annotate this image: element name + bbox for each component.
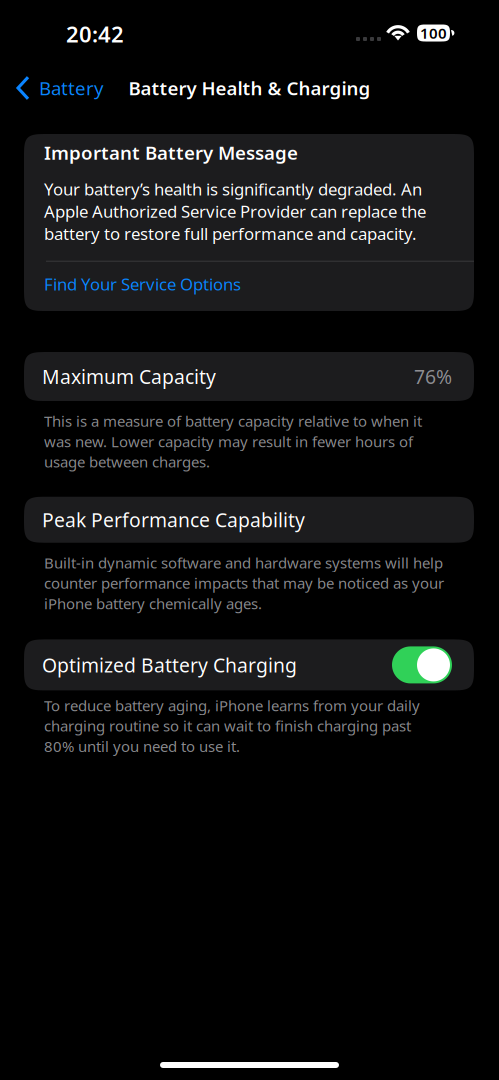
button[interactable]: Find Your Service Options xyxy=(24,262,474,295)
staticText: 20:42 xyxy=(66,19,124,49)
staticText: Peak Performance Capability xyxy=(42,507,305,533)
staticText: To reduce battery aging, iPhone learns f… xyxy=(44,695,420,756)
staticText: 100 xyxy=(420,23,447,43)
staticText: Important Battery Message xyxy=(44,140,298,165)
button[interactable]: Battery xyxy=(0,66,114,110)
staticText: This is a measure of battery capacity re… xyxy=(44,411,422,472)
staticText: 76% xyxy=(414,364,452,389)
staticText: Built-in dynamic software and hardware s… xyxy=(44,553,444,613)
button[interactable]: Optimized Battery Charging xyxy=(392,646,452,683)
staticText: Battery xyxy=(39,76,104,100)
staticText: Your battery’s health is significantly d… xyxy=(44,178,426,245)
staticText: Battery Health & Charging xyxy=(128,76,370,100)
button[interactable]: Peak Performance Capability xyxy=(0,497,499,543)
staticText: Find Your Service Options xyxy=(44,273,241,295)
staticText: Optimized Battery Charging xyxy=(42,652,297,678)
staticText: Maximum Capacity xyxy=(42,364,216,389)
